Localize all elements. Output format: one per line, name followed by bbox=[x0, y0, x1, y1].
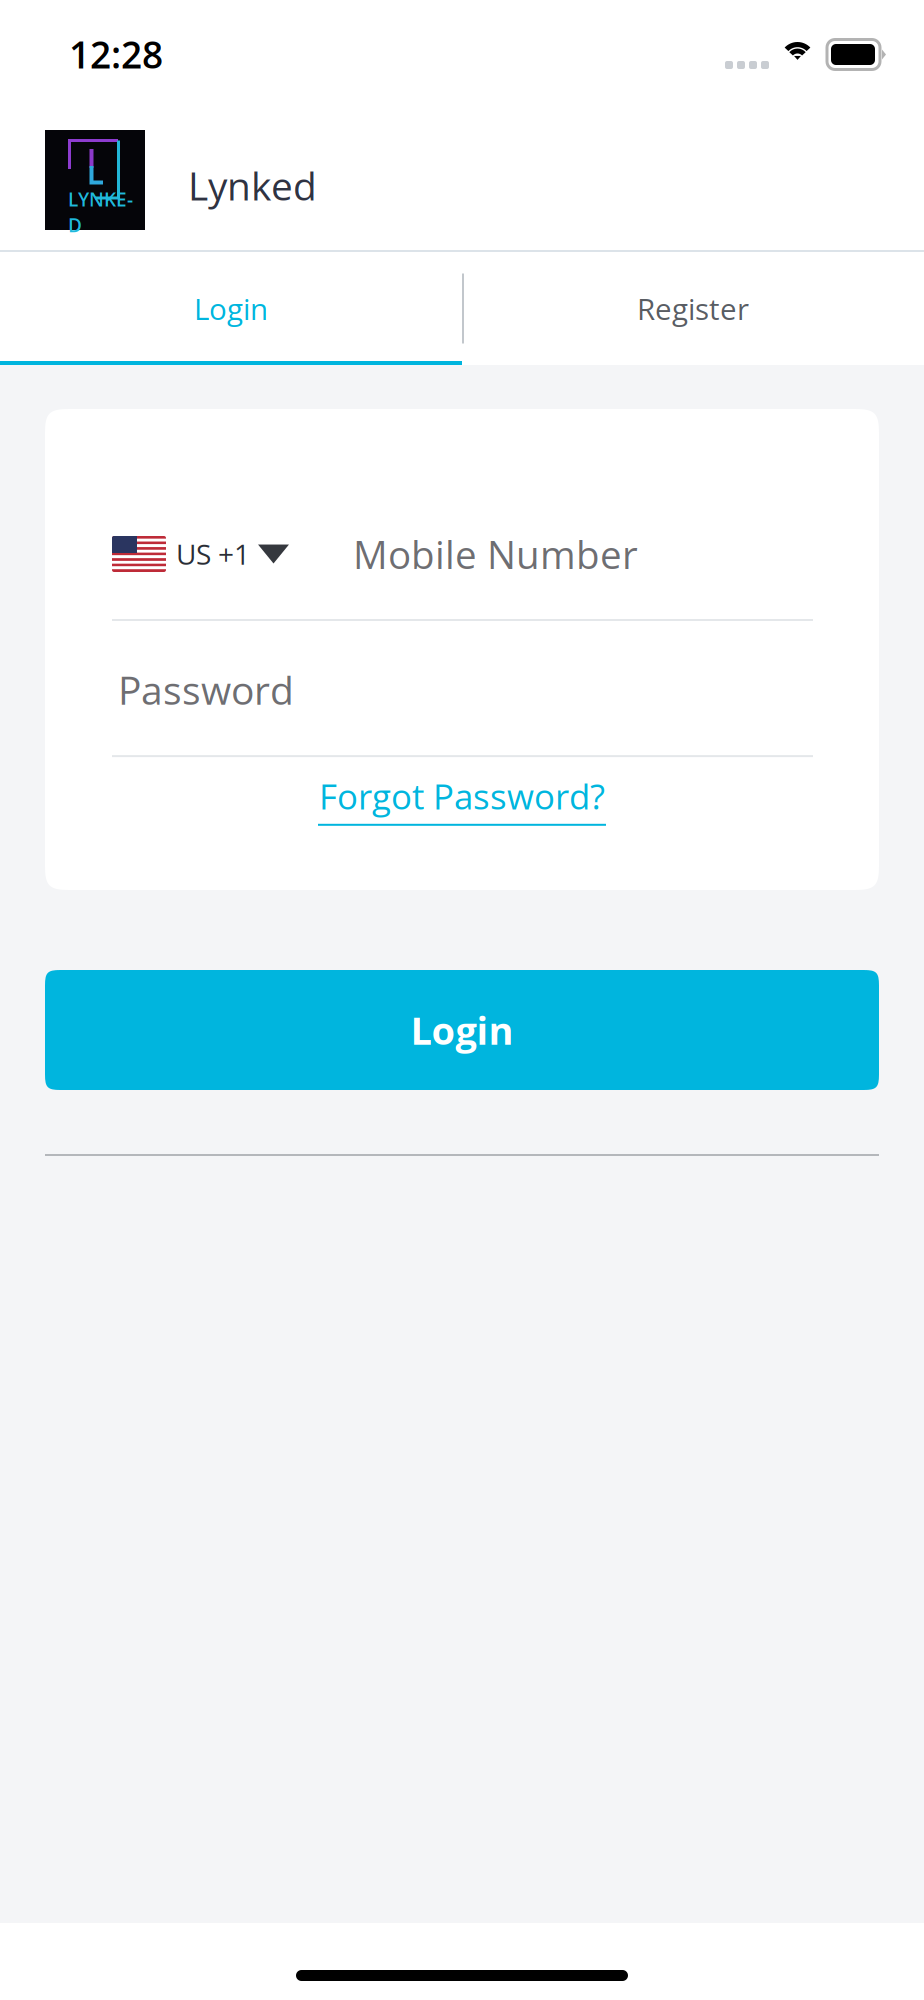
button[interactable]: Login bbox=[0, 252, 462, 365]
staticText: US +1 bbox=[176, 535, 250, 573]
staticText: Login bbox=[194, 288, 268, 329]
staticText: 12:28 bbox=[69, 29, 163, 79]
button[interactable]: Register bbox=[462, 252, 924, 365]
staticText: Forgot Password? bbox=[319, 772, 605, 820]
button[interactable]: Login bbox=[45, 970, 879, 1090]
staticText: Password bbox=[118, 663, 294, 716]
button[interactable]: US +1 bbox=[112, 527, 289, 581]
staticText: Lynked bbox=[188, 159, 317, 212]
staticText: LYNKED bbox=[68, 186, 133, 238]
button[interactable]: Forgot Password? bbox=[318, 770, 606, 828]
staticText: Mobile Number bbox=[353, 528, 638, 580]
staticText: Login bbox=[410, 1004, 513, 1056]
staticText: Register bbox=[637, 288, 749, 329]
